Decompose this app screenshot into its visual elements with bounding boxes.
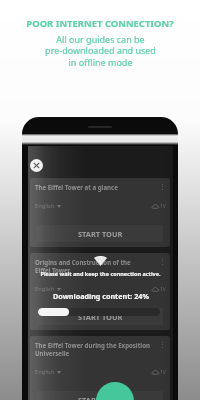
staticText: ⋮ <box>159 341 166 349</box>
staticText: English <box>35 368 55 376</box>
button[interactable]: Origins and Construction of the Eiffel T… <box>30 253 170 330</box>
staticText: All our guides can be pre-downloaded and… <box>45 33 156 69</box>
staticText: English <box>35 202 55 210</box>
button[interactable]: The Eiffel Tower during the Exposition U… <box>30 336 170 400</box>
staticText: START TOUR <box>78 229 123 239</box>
staticText: English <box>35 285 55 293</box>
staticText: Downloading content: 24% <box>53 291 149 301</box>
button[interactable]: START TOUR <box>37 391 163 400</box>
button[interactable]: Close <box>30 159 43 172</box>
staticText: START TOUR <box>78 395 123 400</box>
button[interactable]: The Eiffel Tower at a glance <box>30 178 170 247</box>
staticText: Please wait and keep the connection acti… <box>40 270 161 277</box>
staticText: POOR INTERNET CONNECTION? <box>26 17 174 30</box>
button[interactable]: Download all guides <box>96 382 134 400</box>
staticText: Origins and Construction of the Eiffel T… <box>35 258 159 274</box>
staticText: 1V <box>160 369 166 376</box>
button[interactable]: START TOUR <box>37 308 163 325</box>
staticText: 1V <box>160 286 166 293</box>
staticText: The Eiffel Tower at a glance <box>35 183 159 191</box>
staticText: START TOUR <box>78 312 123 322</box>
staticText: ⋮ <box>159 183 166 191</box>
staticText: 1V <box>160 203 166 210</box>
staticText: ⋮ <box>159 258 166 266</box>
staticText: The Eiffel Tower during the Exposition U… <box>35 341 159 357</box>
button[interactable]: START TOUR <box>37 225 163 242</box>
